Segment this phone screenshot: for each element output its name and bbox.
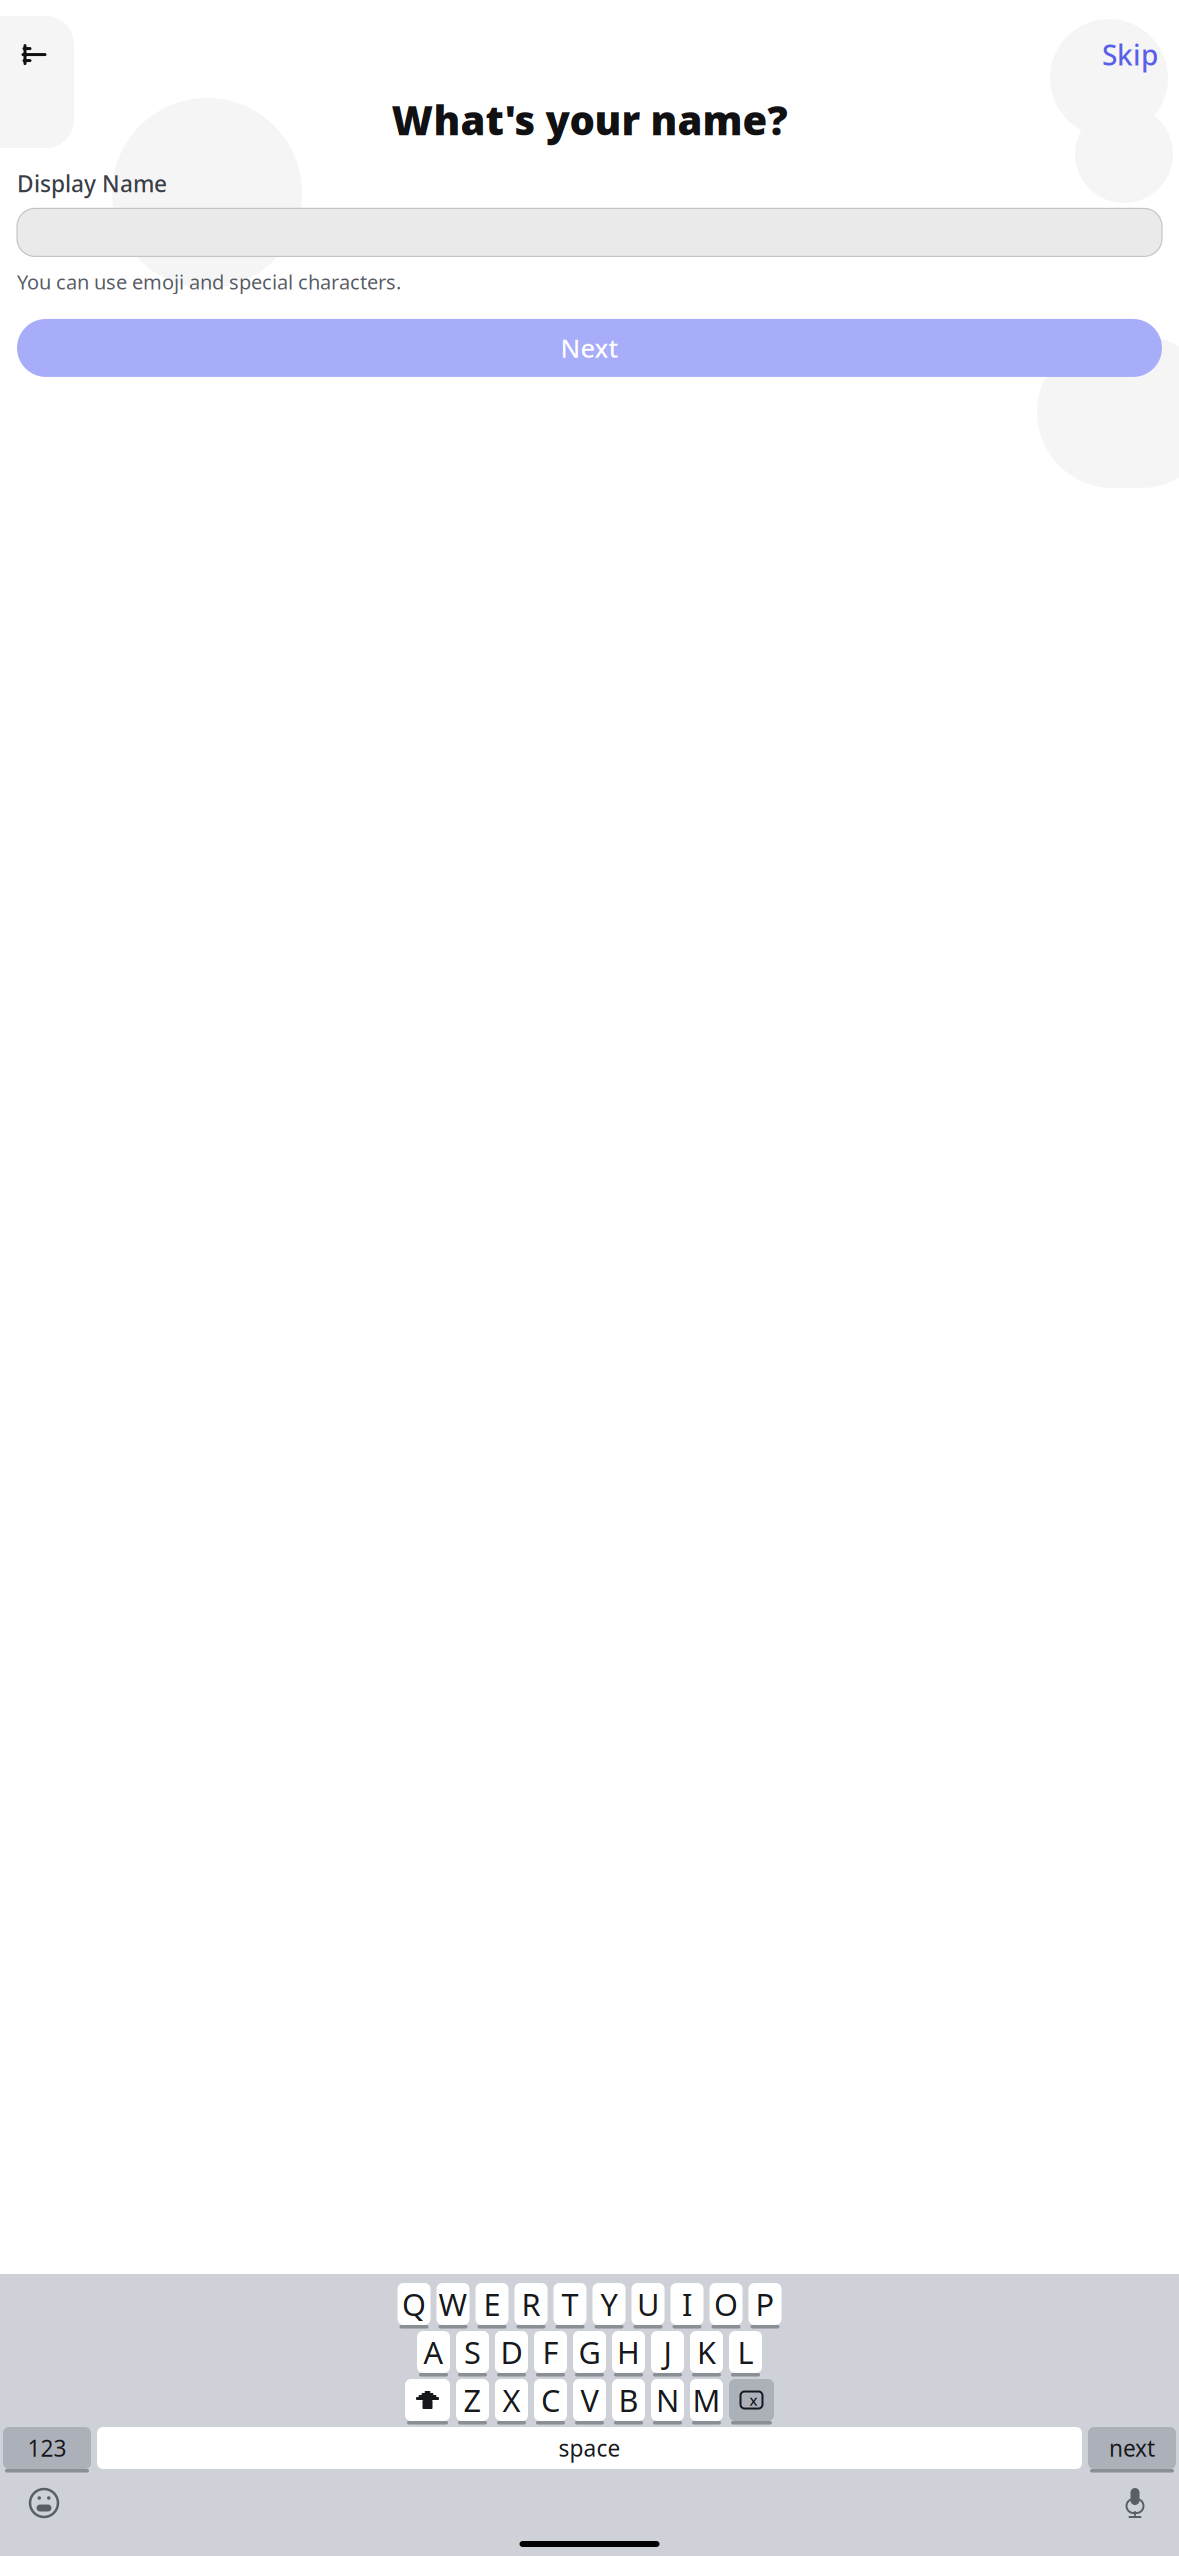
staticText: J bbox=[663, 2332, 671, 2372]
button[interactable]: H bbox=[612, 2331, 645, 2373]
staticText: E bbox=[483, 2284, 500, 2324]
staticText: x bbox=[749, 2390, 757, 2410]
button[interactable]: Z bbox=[456, 2379, 489, 2421]
button[interactable]: W bbox=[436, 2283, 469, 2325]
button[interactable]: F bbox=[534, 2331, 567, 2373]
button[interactable]: G bbox=[573, 2331, 606, 2373]
button[interactable]: J bbox=[651, 2331, 684, 2373]
staticText: K bbox=[697, 2332, 716, 2372]
button[interactable]: R bbox=[514, 2283, 547, 2325]
button[interactable]: U bbox=[631, 2283, 664, 2325]
staticText: Y bbox=[600, 2284, 617, 2324]
button[interactable]: Delete bbox=[729, 2379, 774, 2421]
staticText: Next bbox=[560, 331, 618, 365]
staticText: space bbox=[558, 2433, 620, 2463]
staticText: V bbox=[580, 2380, 598, 2420]
staticText: U bbox=[637, 2284, 659, 2324]
staticText: Skip bbox=[1102, 36, 1158, 73]
button[interactable]: I bbox=[670, 2283, 703, 2325]
button[interactable]: A bbox=[417, 2331, 450, 2373]
staticText: I bbox=[682, 2284, 692, 2324]
staticText: H bbox=[617, 2332, 640, 2372]
staticText: M bbox=[692, 2380, 720, 2420]
staticText: R bbox=[521, 2284, 540, 2324]
button[interactable]: N bbox=[651, 2379, 684, 2421]
button[interactable]: Skip bbox=[1094, 28, 1166, 81]
button[interactable]: X bbox=[495, 2379, 528, 2421]
button[interactable]: T bbox=[553, 2283, 586, 2325]
staticText: L bbox=[737, 2332, 753, 2372]
button[interactable]: Next bbox=[17, 319, 1162, 377]
button[interactable]: O bbox=[709, 2283, 742, 2325]
button[interactable]: B bbox=[612, 2379, 645, 2421]
button[interactable]: space bbox=[97, 2427, 1082, 2469]
staticText: Z bbox=[463, 2380, 481, 2420]
staticText: A bbox=[423, 2332, 443, 2372]
button[interactable]: L bbox=[729, 2331, 762, 2373]
staticText: C bbox=[541, 2380, 560, 2420]
staticText: X bbox=[502, 2380, 520, 2420]
button[interactable]: 123 bbox=[3, 2427, 91, 2469]
button[interactable]: Back bbox=[11, 32, 57, 78]
staticText: B bbox=[618, 2380, 638, 2420]
button[interactable]: Dictation bbox=[1113, 2481, 1157, 2525]
staticText: T bbox=[561, 2284, 578, 2324]
button[interactable]: S bbox=[456, 2331, 489, 2373]
button[interactable]: D bbox=[495, 2331, 528, 2373]
button[interactable]: M bbox=[690, 2379, 723, 2421]
staticText: You can use emoji and special characters… bbox=[17, 268, 401, 295]
staticText: W bbox=[438, 2284, 467, 2324]
staticText: G bbox=[578, 2332, 600, 2372]
button[interactable]: V bbox=[573, 2379, 606, 2421]
staticText: What's your name? bbox=[391, 93, 787, 146]
button[interactable]: C bbox=[534, 2379, 567, 2421]
staticText: N bbox=[656, 2380, 679, 2420]
button[interactable]: P bbox=[748, 2283, 781, 2325]
button[interactable]: next bbox=[1088, 2427, 1176, 2469]
staticText: 123 bbox=[27, 2433, 66, 2463]
button[interactable]: Emoji bbox=[22, 2481, 66, 2525]
button[interactable]: E bbox=[475, 2283, 508, 2325]
staticText: P bbox=[755, 2284, 774, 2324]
staticText: next bbox=[1109, 2433, 1155, 2463]
button[interactable]: Y bbox=[592, 2283, 625, 2325]
staticText: S bbox=[464, 2332, 481, 2372]
staticText: Display Name bbox=[17, 168, 167, 198]
button[interactable]: Shift bbox=[405, 2379, 450, 2421]
staticText: O bbox=[714, 2284, 738, 2324]
staticText: D bbox=[500, 2332, 522, 2372]
staticText: F bbox=[542, 2332, 558, 2372]
button[interactable]: Q bbox=[397, 2283, 430, 2325]
button[interactable]: K bbox=[690, 2331, 723, 2373]
staticText: Q bbox=[402, 2284, 426, 2324]
